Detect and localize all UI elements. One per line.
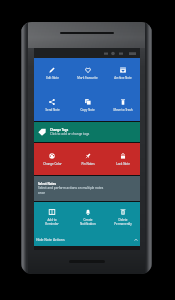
button[interactable]: Hide Note Actions xyxy=(34,233,140,246)
staticText: Send Note xyxy=(45,108,60,112)
button[interactable]: Add to reminder xyxy=(34,202,70,233)
button[interactable]: Delete permanently xyxy=(105,202,140,233)
other: Lock note xyxy=(120,153,126,159)
staticText: Add to Reminder xyxy=(45,218,59,226)
staticText: Create Notification xyxy=(80,218,96,226)
button[interactable]: Change color xyxy=(34,143,70,175)
other: Add to reminder xyxy=(49,209,55,215)
staticText: Hide Note Actions xyxy=(36,237,65,242)
button[interactable]: Send note xyxy=(34,89,70,121)
button[interactable]: Create notification xyxy=(70,202,105,233)
staticText: Change Color xyxy=(43,162,62,166)
staticText: Copy Note xyxy=(80,108,95,112)
other: Archive note xyxy=(120,67,126,73)
button[interactable]: Copy note xyxy=(70,89,105,121)
staticText: Click to add or change tags xyxy=(50,132,90,136)
staticText: Edit Note xyxy=(46,76,59,80)
other: Delete permanently xyxy=(120,209,126,215)
other: Collapse xyxy=(134,238,138,242)
other: Change tags xyxy=(38,128,46,136)
button[interactable]: Lock note xyxy=(105,143,140,175)
other: Change color xyxy=(49,153,55,159)
button[interactable]: Pin notes xyxy=(70,143,105,175)
staticText: Lock Note xyxy=(116,162,130,166)
other: Create notification xyxy=(85,209,91,215)
button[interactable]: Select Notes xyxy=(34,176,140,201)
other: Move to trash xyxy=(120,99,126,105)
other: Mark favourite xyxy=(85,67,91,73)
button[interactable]: Mark favourite xyxy=(70,58,105,89)
staticText: Move to Trash xyxy=(113,108,133,112)
other: Send note xyxy=(49,99,55,105)
staticText: Archive Note xyxy=(114,76,132,80)
other: Copy note xyxy=(85,99,91,105)
staticText: Delete Permanently xyxy=(114,218,132,226)
other: Pin notes xyxy=(85,153,91,159)
button[interactable]: Move to trash xyxy=(105,89,140,121)
staticText: Mark Favourite xyxy=(77,76,98,80)
button[interactable]: Edit note xyxy=(34,58,70,89)
staticText: Change Tags xyxy=(50,128,69,132)
button[interactable]: Change tags xyxy=(34,122,140,142)
other: Edit note xyxy=(49,67,55,73)
staticText: Select Notes xyxy=(38,182,56,186)
staticText: Select and perform actions on multiple n… xyxy=(38,186,104,195)
button[interactable]: Archive note xyxy=(105,58,140,89)
staticText: Pin Notes xyxy=(81,162,95,166)
